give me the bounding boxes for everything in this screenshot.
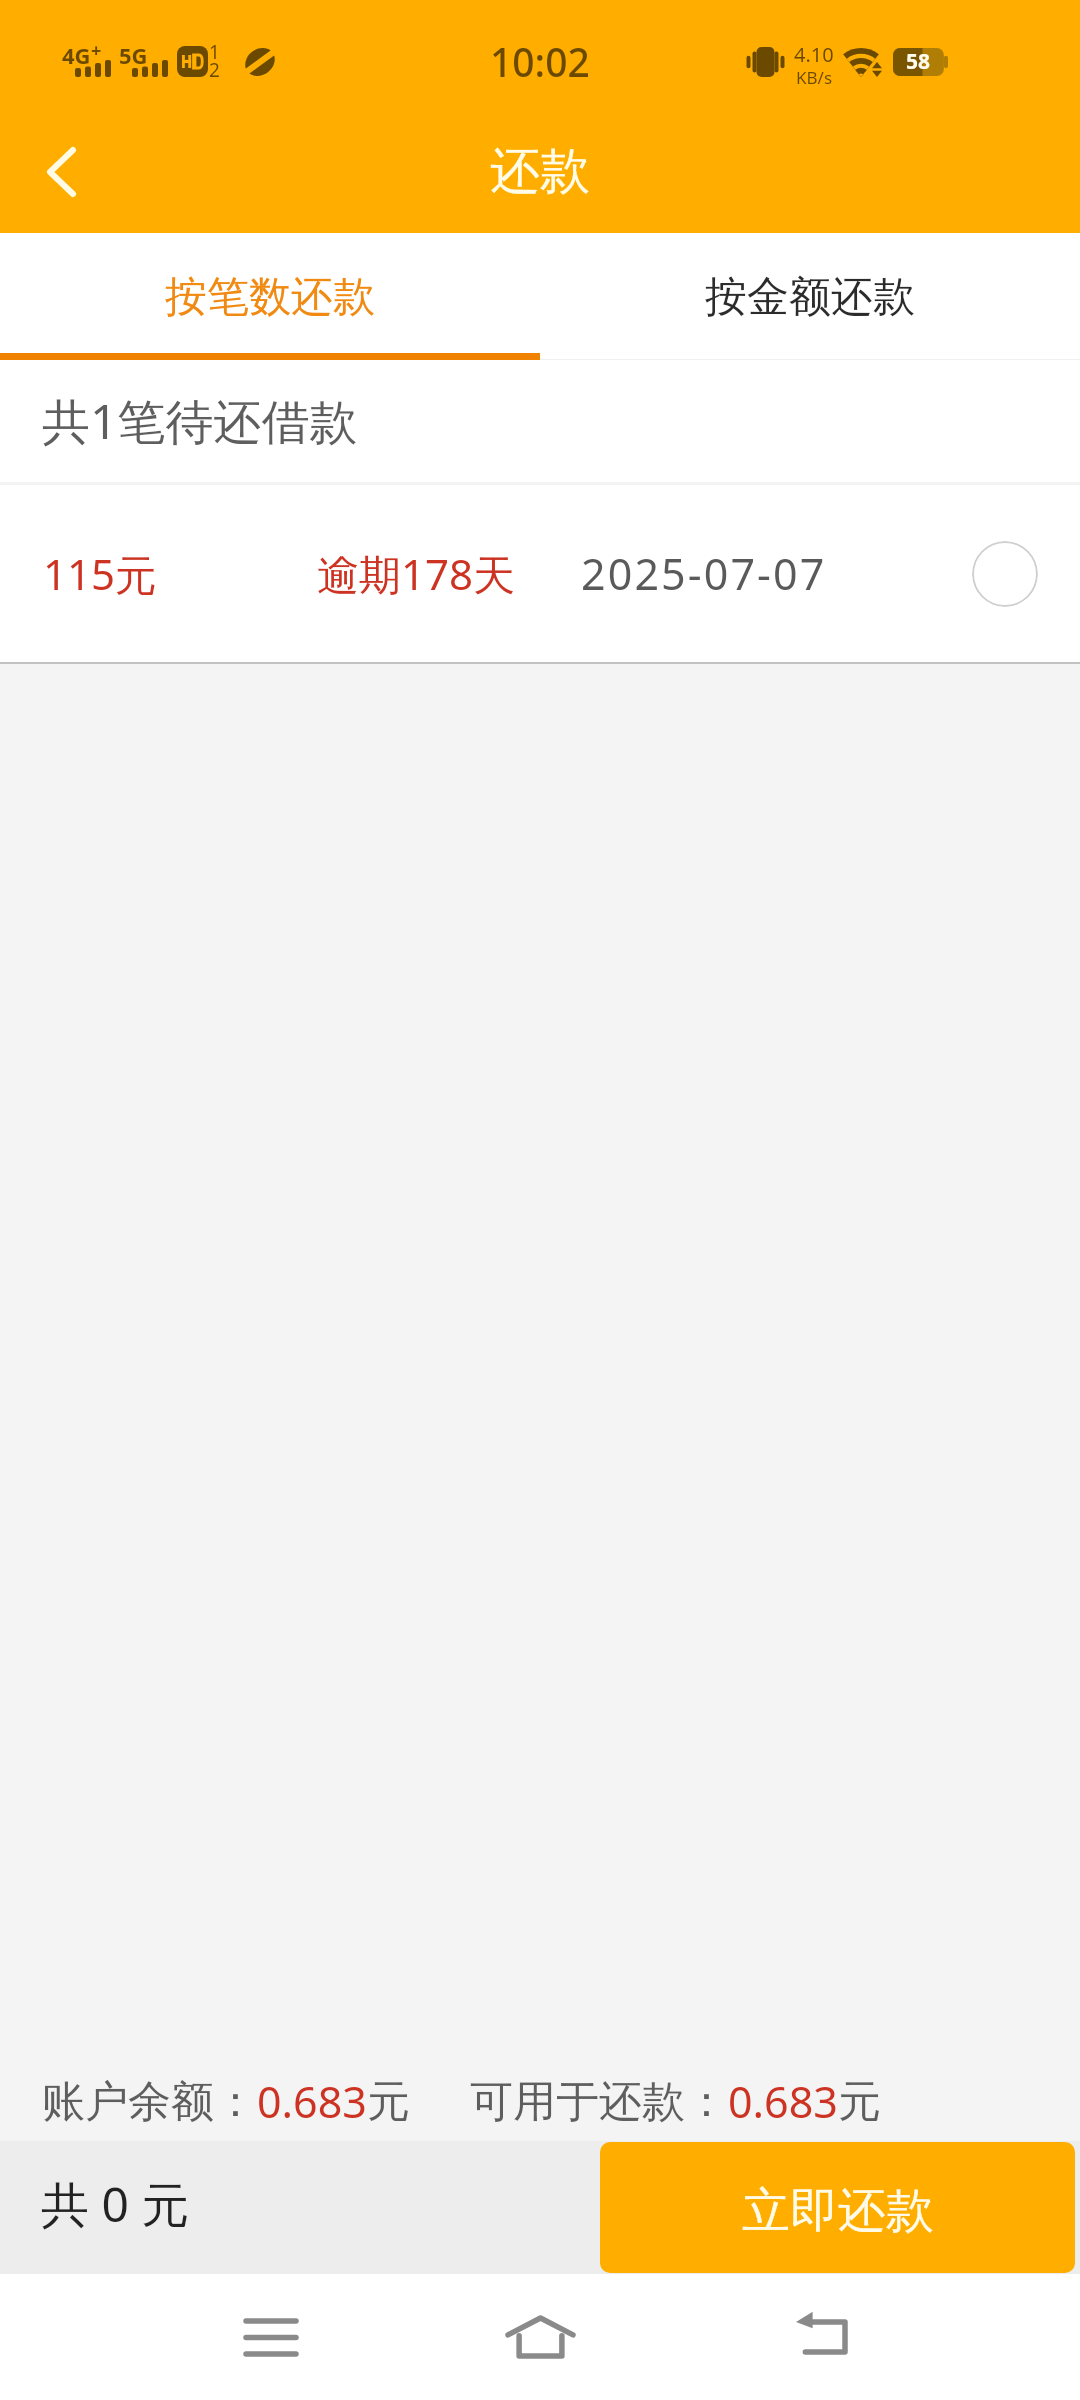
staticText: 1 bbox=[209, 39, 220, 65]
staticText: 0.683 bbox=[257, 2072, 367, 2131]
staticText: 共1笔待还借款 bbox=[42, 388, 358, 454]
staticText: 10:02 bbox=[490, 35, 590, 88]
staticText: 按金额还款 bbox=[705, 271, 915, 324]
staticText: 2025-07-07 bbox=[581, 544, 827, 603]
button[interactable]: 按笔数还款 bbox=[0, 233, 540, 353]
button[interactable]: 返回 bbox=[6, 117, 116, 227]
staticText: 0.683 bbox=[728, 2072, 838, 2131]
button[interactable]: 返回 bbox=[762, 2277, 882, 2397]
staticText: 逾期178天 bbox=[317, 545, 516, 602]
button[interactable]: 按金额还款 bbox=[540, 233, 1080, 353]
staticText: 元 bbox=[367, 2075, 410, 2129]
button[interactable]: 115元 bbox=[0, 485, 1080, 662]
button[interactable]: 选择 bbox=[972, 541, 1038, 607]
staticText: 按笔数还款 bbox=[165, 271, 375, 324]
staticText: 4.10 bbox=[794, 41, 834, 68]
staticText: 共 0 元 bbox=[41, 2171, 190, 2237]
button[interactable]: 立即还款 bbox=[600, 2142, 1075, 2273]
staticText: 立即还款 bbox=[742, 2181, 934, 2241]
staticText: KB/s bbox=[796, 66, 833, 89]
button[interactable]: 最近任务 bbox=[211, 2277, 331, 2397]
staticText: 还款 bbox=[490, 140, 590, 203]
staticText: + bbox=[91, 38, 102, 63]
staticText: 元 bbox=[838, 2075, 881, 2129]
button[interactable]: 主页 bbox=[480, 2277, 600, 2397]
staticText: 5G bbox=[119, 40, 148, 70]
staticText: 账户余额： bbox=[42, 2075, 257, 2129]
staticText: 115元 bbox=[43, 545, 158, 602]
staticText: 58 bbox=[906, 47, 931, 75]
staticText: 4G bbox=[62, 40, 91, 70]
staticText: 2 bbox=[209, 57, 220, 83]
staticText: 可用于还款： bbox=[470, 2075, 728, 2129]
